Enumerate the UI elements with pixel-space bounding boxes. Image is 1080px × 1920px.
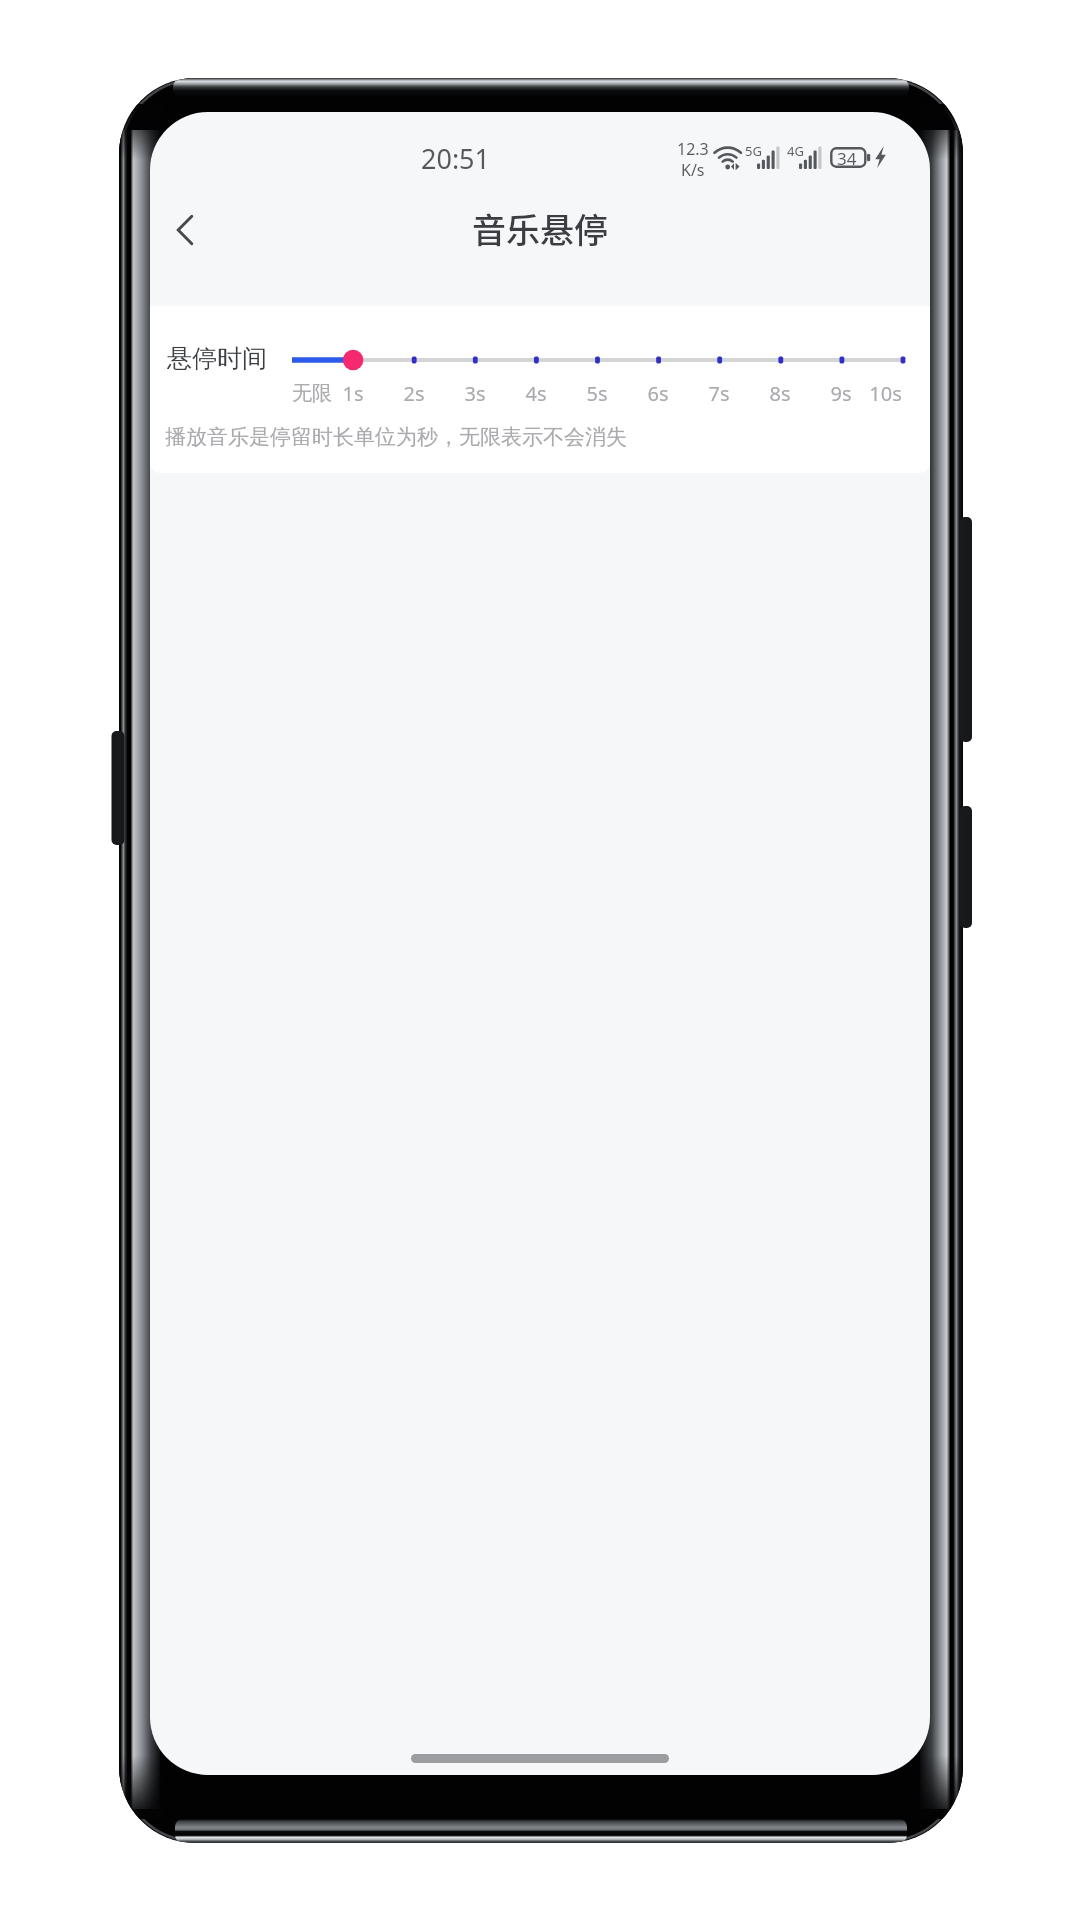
button[interactable]: 无限 <box>292 380 352 406</box>
button[interactable]: 7s <box>689 380 749 406</box>
button[interactable]: 1s <box>323 380 383 406</box>
staticText: 20:51 <box>421 140 491 177</box>
staticText: 5s <box>586 380 608 406</box>
staticText: 播放音乐是停留时长单位为秒，无限表示不会消失 <box>165 424 627 450</box>
button[interactable]: 9s <box>811 380 871 406</box>
staticText: 34 <box>837 147 857 168</box>
staticText: 3s <box>464 380 486 406</box>
staticText: 1s <box>342 380 364 406</box>
staticText: 6s <box>647 380 669 406</box>
staticText: 7s <box>708 380 730 406</box>
button[interactable]: 4s <box>506 380 566 406</box>
button[interactable]: 悬停时间 <box>150 306 930 473</box>
staticText: 4G <box>787 142 804 160</box>
staticText: 无限 <box>292 381 332 406</box>
button[interactable]: Back <box>154 190 216 270</box>
staticText: 2s <box>403 380 425 406</box>
staticText: 4s <box>525 380 547 406</box>
button[interactable]: 5s <box>567 380 627 406</box>
staticText: 5G <box>745 142 762 160</box>
staticText: K/s <box>681 159 705 181</box>
staticText: 10s <box>869 380 902 406</box>
staticText: 9s <box>830 380 852 406</box>
button[interactable]: 2s <box>384 380 444 406</box>
button[interactable]: 3s <box>445 380 505 406</box>
staticText: 12.3 <box>677 138 709 160</box>
button[interactable]: 8s <box>750 380 810 406</box>
button[interactable]: 10s <box>842 380 902 406</box>
staticText: 音乐悬停 <box>472 204 608 253</box>
staticText: 悬停时间 <box>167 343 267 374</box>
staticText: 8s <box>769 380 791 406</box>
button[interactable]: 6s <box>628 380 688 406</box>
button[interactable] <box>282 340 913 380</box>
